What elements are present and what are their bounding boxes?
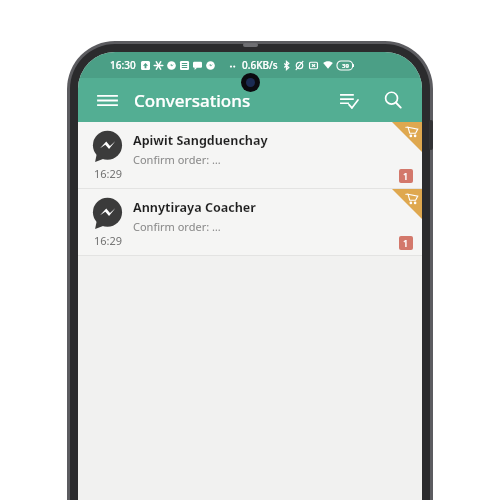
button[interactable]: Open navigation menu — [92, 85, 122, 115]
staticText: 1 — [403, 237, 409, 249]
staticText: Apiwit Sangduenchay — [133, 132, 268, 149]
button[interactable]: Search — [378, 85, 408, 115]
button[interactable]: Mark all as read — [334, 85, 364, 115]
staticText: 16:29 — [94, 166, 123, 181]
staticText: Conversations — [134, 89, 251, 112]
staticText: 0.6KB/s — [242, 58, 278, 72]
staticText: Confirm order: … — [133, 152, 221, 167]
button[interactable]: Apiwit Sangduenchay — [78, 122, 422, 188]
staticText: 16:30 — [110, 58, 136, 72]
staticText: 39 — [342, 62, 349, 70]
staticText: 16:29 — [94, 233, 123, 248]
staticText: 1 — [403, 170, 409, 182]
staticText: Confirm order: … — [133, 219, 221, 234]
staticText: Annytiraya Coacher — [133, 199, 256, 216]
button[interactable]: Annytiraya Coacher — [78, 189, 422, 255]
